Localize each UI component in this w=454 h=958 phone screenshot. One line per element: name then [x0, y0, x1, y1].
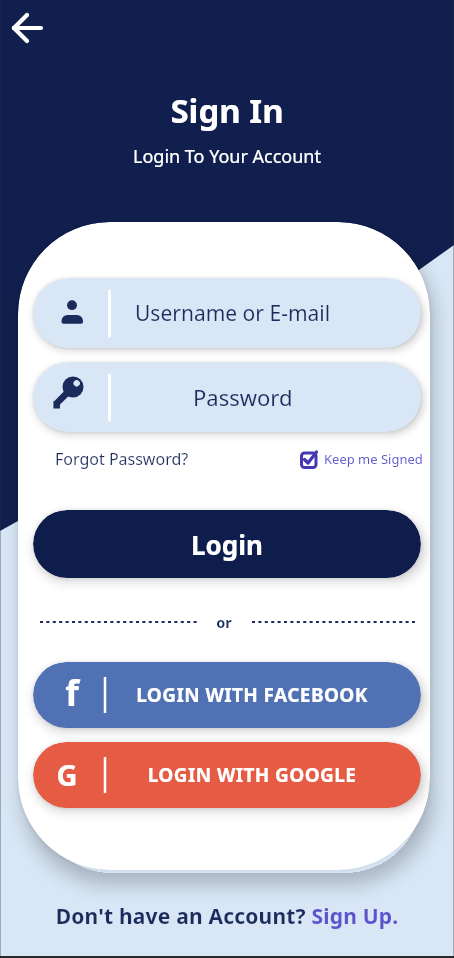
- button[interactable]: Login: [33, 510, 421, 578]
- staticText: Login To Your Account: [0, 144, 454, 169]
- button[interactable]: Username or E-mail: [33, 278, 421, 348]
- button[interactable]: [6, 6, 50, 50]
- staticText: f: [61, 669, 83, 717]
- staticText: Username or E-mail: [135, 299, 331, 328]
- staticText: Login: [191, 527, 263, 562]
- staticText: or: [18, 612, 430, 632]
- staticText: LOGIN WITH GOOGLE: [99, 762, 405, 788]
- staticText: Keep me Signed: [324, 450, 423, 468]
- button[interactable]: Forgot Password?: [55, 448, 189, 470]
- staticText: Sign In: [0, 88, 454, 133]
- staticText: LOGIN WITH FACEBOOK: [99, 682, 405, 708]
- button[interactable]: Keep me Signed: [300, 450, 423, 468]
- button[interactable]: f: [33, 662, 421, 728]
- button[interactable]: Don't have an Account? Sign Up.: [0, 902, 454, 931]
- staticText: G: [53, 755, 81, 794]
- staticText: Password: [193, 382, 293, 412]
- button[interactable]: Password: [33, 362, 421, 432]
- button[interactable]: G: [33, 742, 421, 808]
